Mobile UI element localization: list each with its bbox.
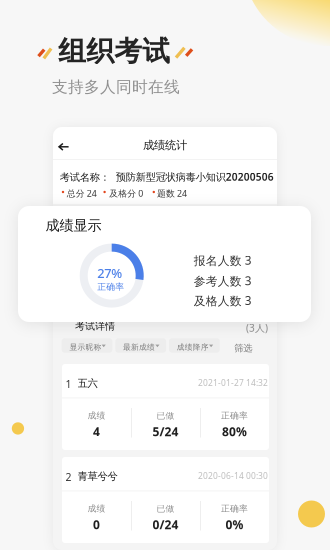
staticText: 成绩显示 [46,217,102,235]
button[interactable]: 2 [62,457,269,543]
staticText: 考试名称： [60,171,110,184]
button[interactable]: 1 [62,364,269,450]
staticText: 已做 [156,503,174,514]
staticText: 1 [65,377,71,391]
staticText: 五六 [77,377,97,390]
staticText: 27% [97,264,122,282]
staticText: 青草兮兮 [77,470,117,483]
button[interactable]: Back [51,137,75,157]
staticText: 及格分 0 [109,187,143,199]
staticText: 组织考试 [58,34,170,69]
staticText: 0 [93,516,100,533]
staticText: 预防新型冠状病毒小知识20200506 [116,170,274,184]
staticText: 2020-06-14 00:30 [198,470,268,481]
staticText: 成绩降序 [177,342,209,352]
staticText: 最新成绩 [123,342,155,352]
button[interactable]: 显示昵称 [62,338,112,353]
staticText: 考试详情 [75,320,115,332]
staticText: 参考人数 3 [194,273,252,289]
staticText: (3人) [246,321,268,335]
button[interactable]: 筛选 [234,341,264,355]
staticText: 筛选 [234,342,252,354]
staticText: 2021-01-27 14:32 [198,377,268,388]
staticText: 报名人数 3 [194,252,252,268]
staticText: 成绩统计 [143,138,187,152]
staticText: 80% [222,423,247,440]
staticText: 正确率 [221,410,248,421]
staticText: 成绩 [87,410,105,421]
staticText: 0/24 [152,516,178,533]
staticText: 5/24 [152,423,178,440]
staticText: 已做 [156,410,174,421]
staticText: 正确率 [221,503,248,514]
staticText: 4 [93,423,100,440]
staticText: 支持多人同时在线 [52,77,180,97]
staticText: 及格人数 3 [194,292,252,308]
button[interactable]: 最新成绩 [115,338,166,353]
staticText: 成绩 [87,503,105,514]
staticText: 题数 24 [157,187,187,199]
staticText: 总分 24 [67,187,97,199]
button[interactable]: 成绩降序 [169,338,220,353]
staticText: 显示昵称 [69,342,101,352]
staticText: 2 [65,470,71,484]
staticText: 正确率 [97,281,124,292]
staticText: 0% [225,516,243,533]
